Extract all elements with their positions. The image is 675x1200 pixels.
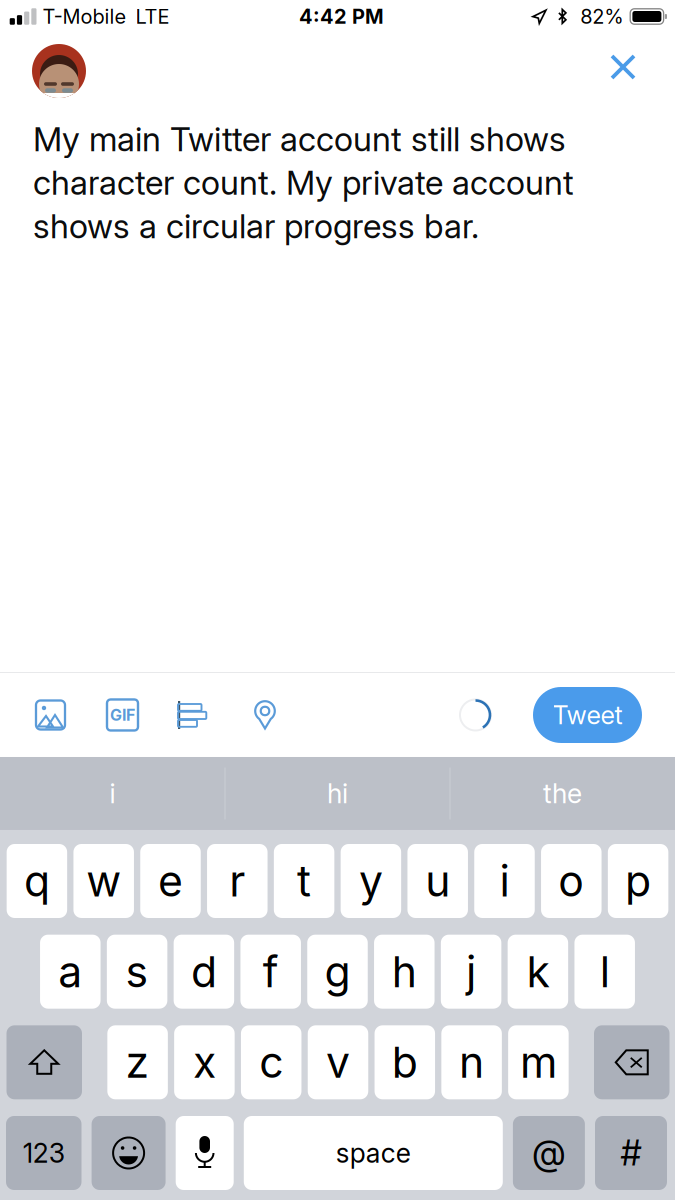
staticText: u (425, 855, 450, 907)
button[interactable]: z (107, 1025, 168, 1099)
button[interactable]: r (207, 844, 267, 918)
staticText: 4:42 PM (299, 4, 384, 29)
staticText: k (526, 946, 549, 997)
staticText: n (459, 1036, 484, 1088)
staticText: y (359, 855, 383, 907)
staticText: q (24, 855, 50, 907)
staticText: b (392, 1036, 418, 1088)
button[interactable]: y (341, 844, 401, 918)
staticText: o (558, 855, 584, 907)
staticText: T-Mobile (42, 4, 126, 29)
staticText: a (58, 946, 82, 997)
button[interactable]: Add GIF (107, 699, 138, 730)
staticText: p (625, 855, 651, 907)
staticText: f (263, 946, 279, 997)
staticText: s (126, 946, 149, 997)
button[interactable]: q (7, 844, 67, 918)
staticText: space (336, 1137, 411, 1169)
staticText: Tweet (552, 700, 622, 730)
staticText: i (499, 855, 509, 907)
button[interactable]: k (508, 935, 568, 1009)
button[interactable]: d (174, 935, 234, 1009)
staticText: My main Twitter account still shows char… (33, 119, 574, 246)
button[interactable]: b (375, 1025, 435, 1099)
staticText: GIF (110, 705, 135, 725)
staticText: the (543, 777, 582, 810)
button[interactable]: @ (513, 1116, 585, 1190)
button[interactable]: o (541, 844, 601, 918)
staticText: l (600, 946, 610, 997)
staticText: i (109, 777, 115, 810)
staticText: r (229, 855, 245, 907)
button[interactable]: l (574, 935, 635, 1009)
button[interactable]: Shift (6, 1025, 82, 1099)
button[interactable]: 123 (6, 1116, 81, 1190)
button[interactable]: h (374, 935, 435, 1009)
button[interactable]: Emoji (92, 1116, 166, 1190)
button[interactable]: g (307, 935, 368, 1009)
button[interactable]: v (308, 1025, 368, 1099)
button[interactable]: Close (600, 44, 646, 90)
button[interactable]: space (244, 1116, 503, 1190)
button[interactable]: # (595, 1116, 667, 1190)
staticText: 82% (580, 4, 623, 29)
button[interactable]: hi (225, 757, 449, 830)
button[interactable]: Tweet (533, 687, 642, 743)
staticText: e (158, 855, 183, 907)
button[interactable]: Add poll (178, 701, 207, 729)
button[interactable]: x (174, 1025, 235, 1099)
button[interactable]: p (608, 844, 668, 918)
staticText: t (297, 855, 311, 907)
staticText: @ (532, 1132, 566, 1174)
staticText: h (392, 946, 417, 997)
button[interactable]: n (441, 1025, 502, 1099)
staticText: # (620, 1132, 641, 1174)
button[interactable]: a (40, 935, 101, 1009)
button[interactable]: f (240, 935, 301, 1009)
staticText: LTE (135, 4, 169, 29)
staticText: j (466, 946, 476, 997)
button[interactable]: m (508, 1025, 569, 1099)
button[interactable]: u (407, 844, 468, 918)
staticText: w (86, 855, 121, 907)
staticText: 123 (23, 1137, 65, 1169)
button[interactable]: Delete (594, 1025, 669, 1099)
staticText: x (193, 1036, 216, 1088)
button[interactable]: s (107, 935, 167, 1009)
staticText: hi (327, 777, 348, 810)
staticText: v (326, 1036, 350, 1088)
button[interactable]: w (73, 844, 134, 918)
button[interactable]: j (441, 935, 501, 1009)
button[interactable]: t (274, 844, 334, 918)
button[interactable]: i (474, 844, 535, 918)
staticText: m (520, 1036, 557, 1088)
staticText: d (191, 946, 217, 997)
staticText: g (324, 946, 350, 997)
button[interactable]: e (140, 844, 201, 918)
button[interactable]: i (0, 757, 224, 830)
staticText: c (259, 1036, 283, 1088)
button[interactable]: Add location (254, 700, 276, 730)
button[interactable]: the (450, 757, 674, 830)
staticText: z (126, 1036, 150, 1088)
button[interactable]: Dictate (176, 1116, 234, 1190)
button[interactable]: Add photo (36, 700, 65, 729)
button[interactable]: c (241, 1025, 301, 1099)
